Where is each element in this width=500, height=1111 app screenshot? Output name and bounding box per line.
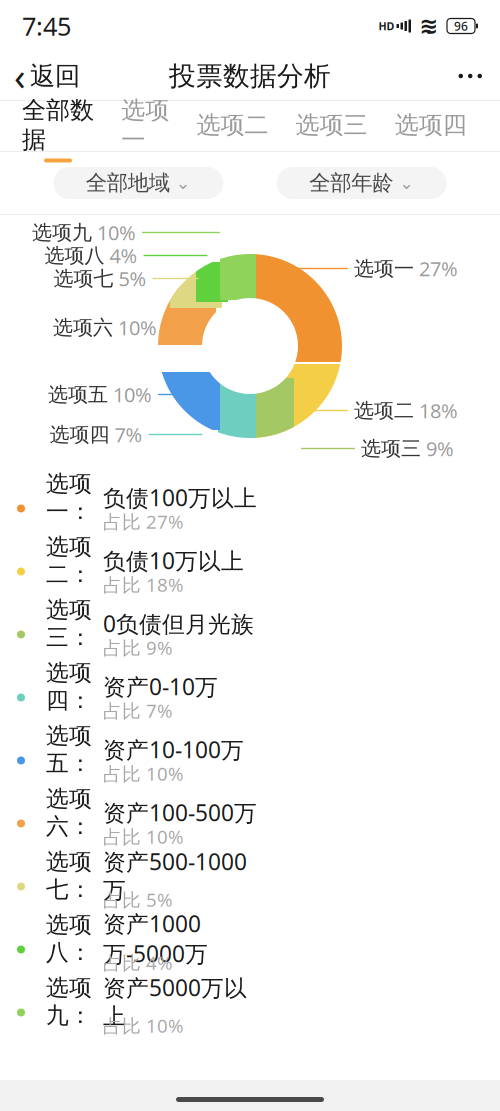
staticText: 占比 7% [103, 698, 173, 723]
staticText: 7:45 [22, 9, 71, 43]
staticText: 选项八 [44, 243, 104, 268]
button[interactable]: 选项四 [387, 104, 475, 148]
staticText: 选项四 [395, 110, 467, 140]
staticText: 7% [114, 421, 142, 448]
staticText: 96 [454, 18, 468, 34]
staticText: 选项二： [46, 533, 92, 588]
staticText: 资产10-100万 [103, 734, 244, 764]
staticText: 10% [97, 219, 136, 246]
staticText: 负债10万以上 [103, 545, 244, 575]
staticText: 0负债但月光族 [103, 608, 254, 638]
staticText: 选项三 [296, 110, 368, 140]
staticText: 10% [118, 314, 157, 341]
staticText: 选项二 [196, 110, 268, 140]
button[interactable]: 选项五： [0, 729, 500, 792]
staticText: 资产100-500万 [103, 797, 257, 827]
staticText: 选项六： [46, 785, 92, 840]
staticText: 选项一 [354, 256, 414, 281]
button[interactable]: 选项一 [113, 89, 177, 162]
staticText: ⌄ [176, 173, 191, 193]
staticText: 5% [118, 265, 146, 292]
staticText: 选项四 [49, 422, 109, 447]
staticText: 占比 10% [103, 1013, 184, 1038]
staticText: 全部地域 [86, 170, 170, 196]
staticText: 占比 10% [103, 824, 184, 849]
staticText: ≋ [419, 13, 438, 39]
button[interactable]: 选项二 [188, 104, 276, 148]
staticText: 全部数据 [22, 95, 94, 154]
button[interactable]: 选项三： [0, 603, 500, 666]
staticText: 27% [419, 255, 458, 282]
staticText: 资产1000万-5000万 [103, 908, 208, 969]
staticText: 选项一 [121, 95, 169, 154]
staticText: 10% [113, 381, 152, 408]
button[interactable]: 选项九： [0, 981, 500, 1044]
staticText: 选项五 [48, 382, 108, 407]
button[interactable]: 选项七： [0, 855, 500, 918]
staticText: 资产500-1000万 [103, 846, 247, 904]
staticText: 占比 5% [103, 887, 173, 912]
staticText: 选项二 [354, 398, 414, 423]
button[interactable]: 全部数据 [14, 89, 102, 162]
staticText: 选项三 [361, 436, 421, 461]
staticText: ⌄ [399, 173, 414, 193]
staticText: 负债100万以上 [103, 482, 257, 512]
button[interactable]: 选项四： [0, 666, 500, 729]
button[interactable]: 选项八： [0, 918, 500, 981]
staticText: 选项九 [32, 220, 92, 245]
staticText: 占比 9% [103, 635, 173, 660]
staticText: 选项三： [46, 596, 92, 651]
staticText: 选项七 [53, 266, 113, 291]
staticText: 占比 4% [103, 950, 173, 975]
staticText: 选项四： [46, 659, 92, 714]
staticText: 返回 [30, 60, 80, 91]
staticText: 资产0-10万 [103, 671, 218, 701]
staticText: 选项一： [46, 470, 92, 525]
staticText: 9% [426, 435, 454, 462]
staticText: 占比 18% [103, 572, 184, 597]
button[interactable]: 选项三 [288, 104, 376, 148]
staticText: 选项七： [46, 848, 92, 903]
staticText: 选项五： [46, 722, 92, 777]
staticText: 选项九： [46, 974, 92, 1029]
button[interactable]: 选项一： [0, 477, 500, 540]
button[interactable]: 更多 [440, 52, 500, 100]
staticText: 投票数据分析 [169, 60, 331, 92]
staticText: 选项六 [53, 315, 113, 340]
button[interactable]: 选项二： [0, 540, 500, 603]
staticText: 资产5000万以上 [103, 972, 247, 1030]
button[interactable]: 全部年龄 [277, 167, 447, 199]
staticText: 占比 27% [103, 509, 184, 534]
staticText: ‹ [14, 51, 26, 101]
button[interactable]: 全部地域 [53, 167, 223, 199]
staticText: 选项八： [46, 911, 92, 966]
staticText: 4% [109, 242, 137, 269]
staticText: 全部年龄 [309, 170, 393, 196]
button[interactable]: ‹ [0, 52, 94, 100]
staticText: 占比 10% [103, 761, 184, 786]
button[interactable]: 选项六： [0, 792, 500, 855]
staticText: HD [378, 19, 394, 33]
staticText: 18% [419, 397, 458, 424]
